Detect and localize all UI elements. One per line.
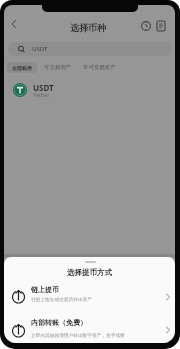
staticText: 立即向其他账簿用户转出数字资产，免手续费 — [31, 332, 125, 338]
staticText: 可交易资产 — [44, 64, 71, 71]
staticText: 内部转账（免费） — [31, 318, 87, 327]
staticText: 全部账类 — [12, 65, 32, 71]
staticText: USDT — [32, 45, 48, 53]
button[interactable]: USDT — [8, 42, 172, 56]
button[interactable] — [155, 20, 167, 32]
button[interactable]: 不可交易资产 — [83, 64, 116, 71]
button[interactable] — [140, 20, 152, 32]
staticText: 不可交易资产 — [83, 64, 116, 71]
button[interactable]: 全部账类 — [7, 62, 37, 73]
button[interactable]: 内部转账（免费） — [4, 316, 175, 343]
staticText: 链上提币 — [31, 285, 59, 294]
staticText: USDT — [33, 82, 54, 93]
staticText: 选择币种 — [70, 22, 106, 33]
staticText: 往链上地址或交易所转出资产 — [31, 296, 92, 302]
button[interactable]: USDT — [4, 79, 175, 105]
staticText: 选择提币方式 — [67, 268, 112, 277]
staticText: Tether — [33, 91, 50, 98]
button[interactable]: 链上提币 — [4, 283, 175, 310]
button[interactable]: 可交易资产 — [44, 64, 71, 71]
button[interactable] — [7, 17, 21, 31]
